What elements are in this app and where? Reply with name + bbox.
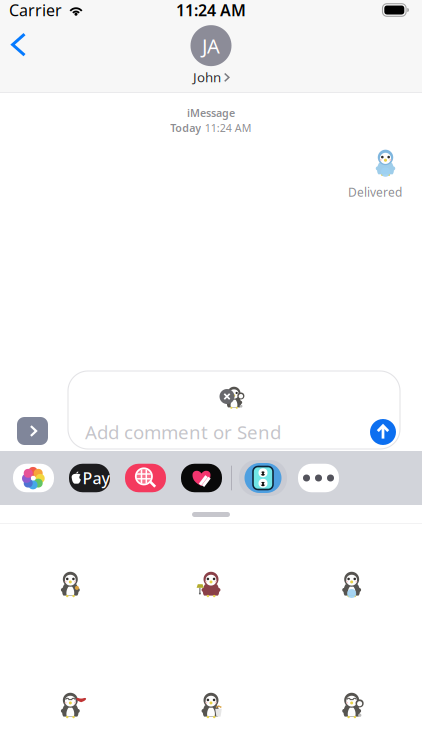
button[interactable]: Stickers — [239, 460, 287, 496]
staticText: Today — [170, 121, 201, 135]
staticText: Add comment or Send — [85, 420, 281, 444]
button[interactable]: Apple Pay — [69, 464, 110, 492]
button[interactable]: Send — [370, 419, 396, 445]
button[interactable]: More apps — [298, 464, 339, 492]
button[interactable]: Sticker — [141, 645, 281, 750]
button[interactable]: John — [189, 66, 233, 87]
button[interactable]: Sticker — [281, 645, 422, 750]
button[interactable]: Show apps — [3, 417, 68, 451]
staticText: JA — [202, 32, 220, 59]
button[interactable]: Sticker — [0, 645, 141, 750]
staticText: 11:24 AM — [176, 0, 246, 21]
button[interactable]: Sticker — [281, 524, 422, 645]
button[interactable]: Images — [125, 464, 166, 492]
staticText: 11:24 AM — [205, 121, 252, 135]
staticText: Carrier — [9, 0, 62, 21]
staticText: John — [193, 68, 221, 86]
button[interactable]: Digital Touch — [181, 464, 222, 492]
button[interactable]: Contact avatar — [190, 25, 231, 66]
staticText: iMessage — [187, 106, 235, 120]
button[interactable]: Remove sticker — [219, 389, 234, 404]
button[interactable]: Back — [0, 25, 36, 64]
button[interactable]: Photos — [13, 464, 54, 492]
staticText: Delivered — [348, 184, 402, 200]
staticText: Pay — [82, 467, 109, 489]
button[interactable]: Sticker — [0, 524, 141, 645]
button[interactable]: Sticker — [141, 524, 281, 645]
